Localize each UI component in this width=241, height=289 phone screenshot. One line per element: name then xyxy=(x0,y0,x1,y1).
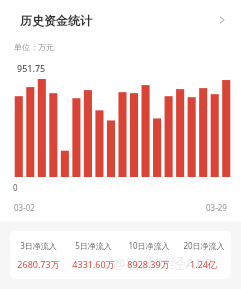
staticText: 03-29 xyxy=(206,202,227,213)
staticText: 20日净流入 xyxy=(183,240,225,251)
staticText: 10日净流入 xyxy=(128,240,170,251)
other: More xyxy=(215,13,229,27)
staticText: 0 xyxy=(13,182,18,193)
staticText: 1.24亿 xyxy=(190,258,217,270)
staticText: 历史资金统计 xyxy=(20,13,92,28)
staticText: 951.75 xyxy=(17,62,46,74)
staticText: 5日净流入 xyxy=(75,240,112,251)
staticText: 3日净流入 xyxy=(20,240,57,251)
staticText: 4331.60万 xyxy=(72,258,115,270)
staticText: 03-02 xyxy=(14,202,35,213)
staticText: @智通财经APP xyxy=(112,253,214,273)
staticText: 单位：万元 xyxy=(14,42,54,52)
button[interactable]: 3日净流入 xyxy=(10,231,231,279)
staticText: 8928.39万 xyxy=(127,258,170,270)
button[interactable]: 历史资金统计 xyxy=(0,0,241,40)
staticText: 2680.73万 xyxy=(17,258,60,270)
